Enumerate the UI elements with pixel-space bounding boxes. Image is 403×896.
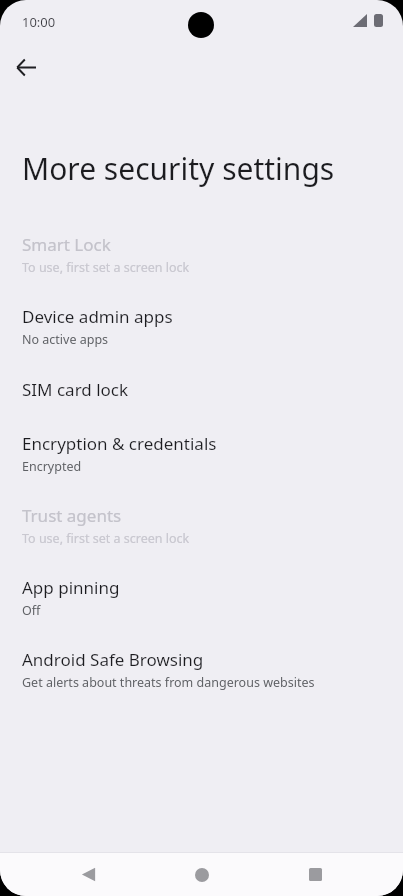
staticText: Encrypted	[22, 458, 82, 475]
staticText: 10:00	[22, 13, 56, 31]
staticText: To use, first set a screen lock	[22, 259, 190, 276]
staticText: Off	[22, 602, 41, 619]
staticText: To use, first set a screen lock	[22, 530, 190, 547]
staticText: No active apps	[22, 331, 109, 348]
button[interactable]: Android Safe Browsing	[0, 633, 403, 705]
button[interactable]: Home	[176, 853, 228, 896]
button[interactable]: Recent apps	[289, 853, 341, 896]
button[interactable]: Navigate up	[5, 46, 47, 88]
staticText: Device admin apps	[22, 305, 173, 328]
staticText: Encryption & credentials	[22, 432, 217, 455]
staticText: SIM card lock	[22, 378, 129, 401]
staticText: Trust agents	[22, 504, 122, 527]
button[interactable]: SIM card lock	[0, 362, 403, 417]
button[interactable]: App pinning	[0, 561, 403, 633]
staticText: App pinning	[22, 576, 120, 599]
staticText: Android Safe Browsing	[22, 648, 204, 671]
staticText: More security settings	[22, 148, 335, 189]
button[interactable]: Back	[62, 853, 114, 896]
button[interactable]: Trust agents	[0, 489, 403, 561]
staticText: Get alerts about threats from dangerous …	[22, 674, 315, 691]
button[interactable]: Device admin apps	[0, 290, 403, 362]
button[interactable]: Encryption & credentials	[0, 417, 403, 489]
staticText: Smart Lock	[22, 233, 111, 256]
button[interactable]: Smart Lock	[0, 218, 403, 290]
